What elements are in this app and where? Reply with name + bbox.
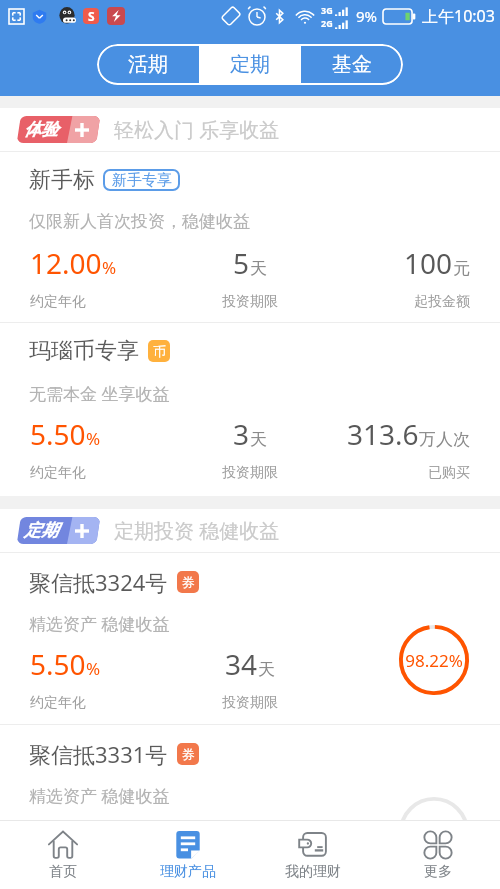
- staticText: 3G: [321, 4, 333, 16]
- button[interactable]: 更多: [375, 821, 500, 889]
- staticText: 玛瑙币专享: [29, 337, 139, 365]
- staticText: 3: [233, 415, 250, 453]
- staticText: 约定年化: [30, 694, 86, 712]
- staticText: 9%: [356, 6, 378, 26]
- staticText: 定期: [24, 520, 58, 541]
- staticText: 定期投资 稳健收益: [114, 517, 280, 544]
- button[interactable]: 首页: [0, 821, 125, 889]
- staticText: 天: [258, 659, 275, 680]
- staticText: %: [102, 256, 117, 279]
- staticText: 上午10:03: [422, 5, 495, 27]
- staticText: 2G: [321, 17, 333, 29]
- staticText: 新手专享: [112, 171, 172, 190]
- staticText: 精选资产 稳健收益: [29, 612, 170, 635]
- staticText: 34: [225, 817, 258, 855]
- staticText: 投资期限: [222, 464, 278, 482]
- staticText: 天: [250, 258, 267, 279]
- staticText: 券: [182, 746, 195, 762]
- button[interactable]: 定期: [199, 44, 301, 85]
- staticText: 仅限新人首次投资，稳健收益: [29, 211, 250, 232]
- staticText: 聚信抵3331号: [29, 739, 168, 769]
- button[interactable]: 聚信抵3331号: [0, 725, 500, 820]
- staticText: 活期: [128, 52, 168, 77]
- staticText: 基金: [332, 52, 372, 77]
- staticText: 约定年化: [30, 293, 86, 311]
- staticText: 无需本金 坐享收益: [29, 382, 170, 405]
- staticText: 5: [233, 244, 250, 282]
- staticText: 已购买: [428, 464, 470, 482]
- staticText: 聚信抵3324号: [29, 567, 168, 597]
- staticText: 5.50: [30, 817, 86, 855]
- staticText: 12.00: [30, 244, 102, 282]
- staticText: 投资期限: [222, 293, 278, 311]
- staticText: 新手标: [29, 166, 95, 194]
- staticText: S: [88, 8, 95, 24]
- button[interactable]: 理财产品: [125, 821, 250, 889]
- staticText: 币: [153, 343, 166, 359]
- button[interactable]: 基金: [301, 44, 403, 85]
- staticText: 约定年化: [30, 464, 86, 482]
- staticText: 投资期限: [222, 694, 278, 712]
- staticText: 98.22%: [405, 649, 463, 672]
- staticText: %: [86, 427, 101, 450]
- staticText: 定期: [230, 52, 270, 77]
- staticText: 起投金额: [414, 293, 470, 311]
- button[interactable]: 玛瑙币专享: [0, 323, 500, 496]
- button[interactable]: 我的理财: [250, 821, 375, 889]
- button[interactable]: 聚信抵3324号: [0, 553, 500, 724]
- staticText: 理财产品: [160, 863, 216, 881]
- staticText: 轻松入门 乐享收益: [114, 116, 280, 143]
- staticText: 元: [453, 258, 470, 279]
- staticText: 我的理财: [285, 863, 341, 881]
- staticText: 5.50: [30, 415, 86, 453]
- staticText: 更多: [424, 863, 452, 881]
- staticText: 精选资产 稳健收益: [29, 784, 170, 807]
- staticText: 34: [225, 645, 258, 683]
- staticText: 约定年化: [30, 866, 86, 884]
- staticText: 体验: [24, 119, 58, 140]
- staticText: 天: [250, 429, 267, 450]
- button[interactable]: 体验: [0, 108, 500, 151]
- staticText: 5.50: [30, 645, 86, 683]
- button[interactable]: 活期: [97, 44, 199, 85]
- staticText: %: [86, 657, 101, 680]
- button[interactable]: 定期: [0, 509, 500, 552]
- staticText: 首页: [49, 863, 77, 881]
- staticText: 万人次: [419, 429, 470, 450]
- staticText: 100: [404, 244, 453, 282]
- staticText: 313.6: [347, 415, 419, 453]
- button[interactable]: 新手标: [0, 152, 500, 322]
- staticText: 券: [182, 574, 195, 590]
